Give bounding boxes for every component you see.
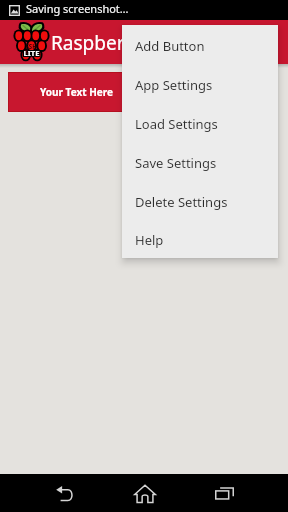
staticText: Saving screenshot… [26, 1, 129, 16]
staticText: Add Button [135, 37, 205, 55]
button[interactable]: Your Text Here [9, 73, 144, 111]
staticText: Load Settings [135, 115, 218, 133]
button[interactable]: Home [121, 474, 169, 512]
staticText: Delete Settings [135, 193, 228, 211]
staticText: Save Settings [135, 154, 217, 172]
staticText: App Settings [135, 76, 213, 94]
button[interactable]: Load Settings [122, 104, 278, 143]
button[interactable]: Back [40, 474, 88, 512]
button[interactable]: Add Button [122, 26, 278, 65]
staticText: Help [135, 231, 164, 249]
button[interactable]: App Settings [122, 65, 278, 104]
button[interactable]: Save Settings [122, 143, 278, 182]
button[interactable]: Delete Settings [122, 182, 278, 221]
staticText: Raspberry [51, 30, 143, 56]
staticText: Your Text Here [40, 85, 113, 99]
button[interactable]: Recent apps [200, 474, 248, 512]
button[interactable]: Help [122, 221, 278, 258]
